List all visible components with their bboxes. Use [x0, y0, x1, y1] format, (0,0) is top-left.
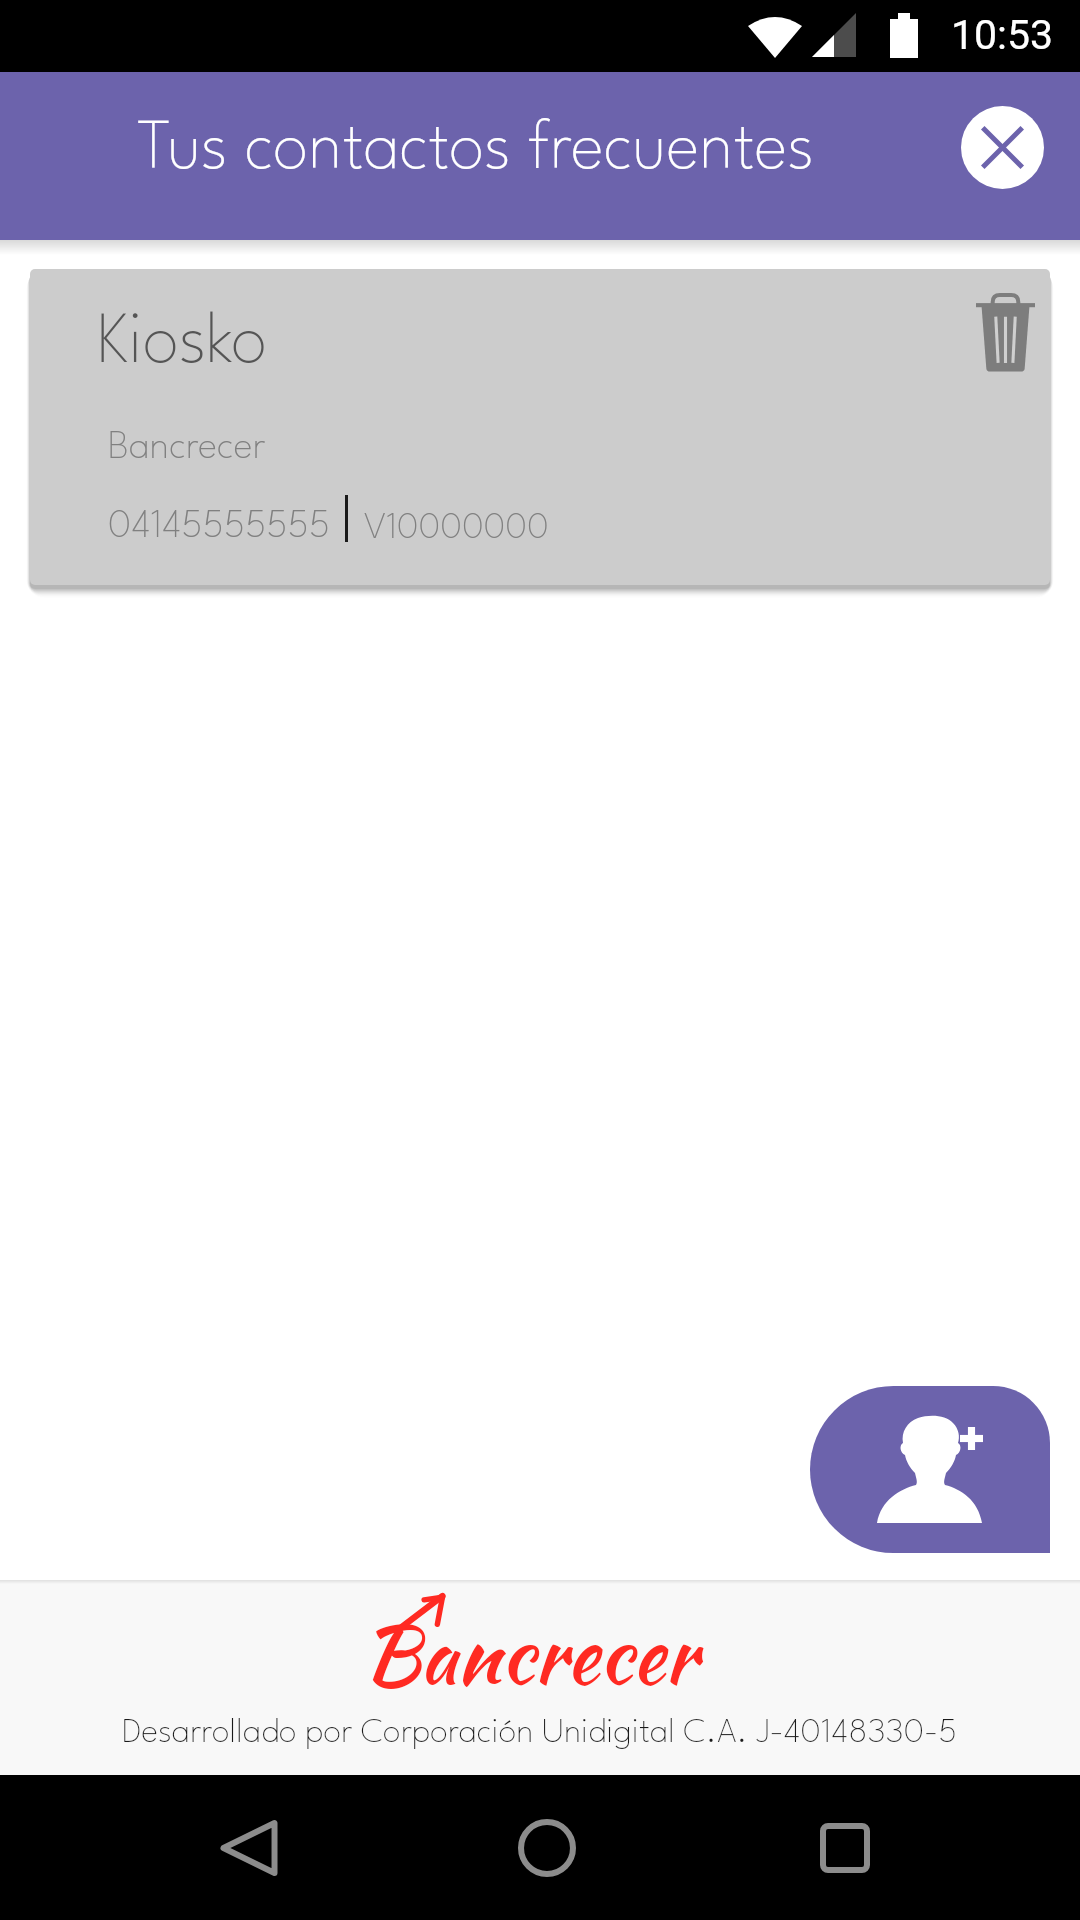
- staticText: Kiosko: [96, 311, 268, 378]
- button[interactable]: Kiosko: [30, 269, 1050, 585]
- staticText: Desarrollado por Corporación Unidigital …: [122, 1717, 958, 1750]
- staticText: Tus contactos frecuentes: [137, 118, 815, 183]
- button[interactable]: Eliminar: [976, 293, 1035, 372]
- button[interactable]: Inicio: [488, 1789, 606, 1907]
- staticText: Bancrecer: [108, 429, 266, 467]
- staticText: V10000000: [364, 511, 549, 546]
- button[interactable]: Cerrar: [961, 106, 1044, 189]
- button[interactable]: Atras: [190, 1789, 308, 1907]
- button[interactable]: Recientes: [786, 1789, 904, 1907]
- button[interactable]: Agregar contacto: [810, 1386, 1050, 1553]
- staticText: Bancrecer: [362, 1596, 697, 1712]
- staticText: 04145555555: [108, 508, 331, 546]
- staticText: 10:53: [951, 11, 1054, 59]
